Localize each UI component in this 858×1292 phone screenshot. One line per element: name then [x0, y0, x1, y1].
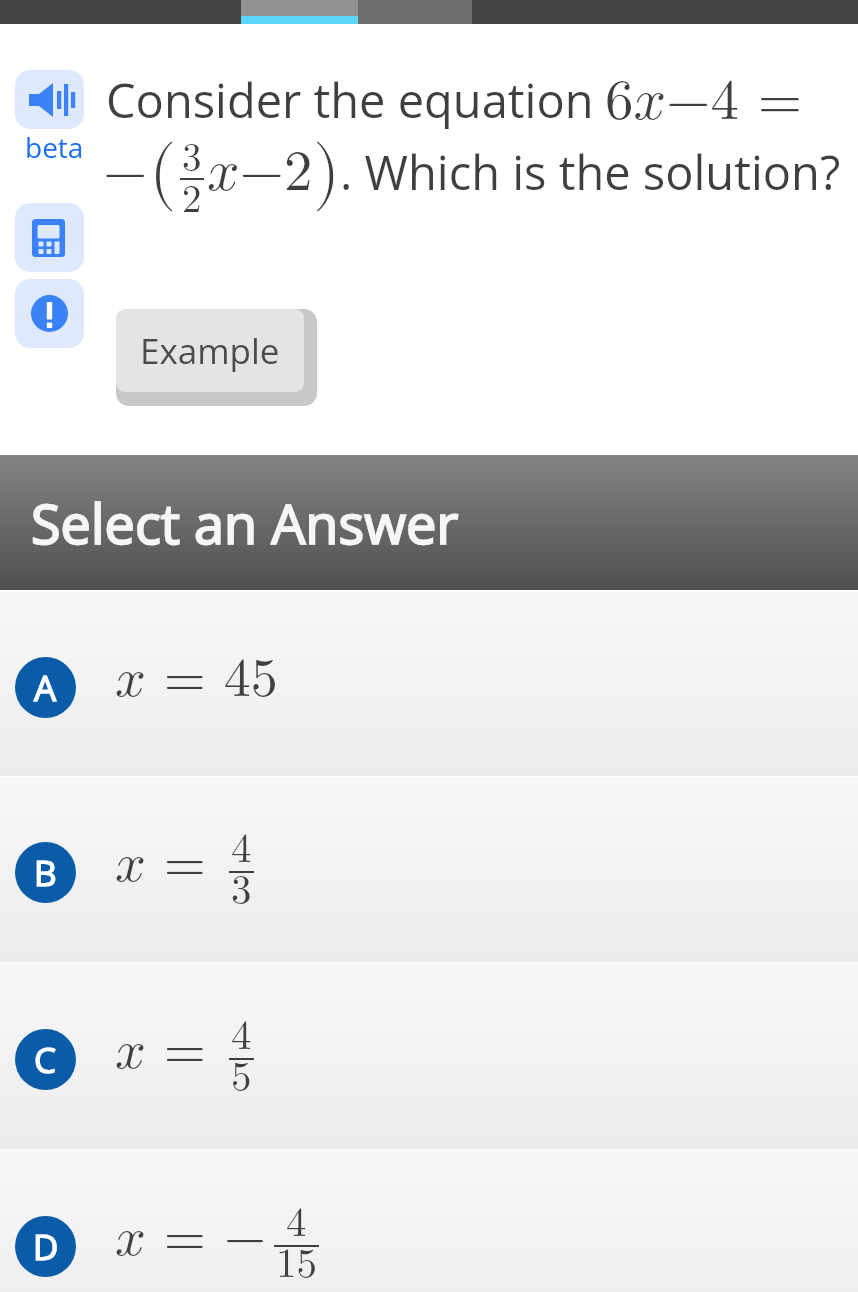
button[interactable]: Report a problem: [15, 279, 84, 348]
staticText: beta: [25, 128, 84, 166]
staticText: Example: [140, 327, 280, 375]
staticText: 4: [286, 1203, 307, 1244]
staticText: −: [103, 144, 148, 201]
staticText: 4: [231, 1016, 252, 1057]
staticText: 𝑥 =: [115, 1211, 224, 1265]
staticText: 𝑥 = 45: [115, 652, 278, 706]
staticText: 𝑥 =: [115, 1024, 224, 1078]
button[interactable]: Listen to the question: [15, 70, 84, 129]
staticText: A: [34, 664, 57, 712]
button[interactable]: A: [0, 592, 858, 776]
staticText: 3: [231, 870, 252, 911]
staticText: Consider the equation: [106, 68, 594, 132]
staticText: (: [149, 138, 177, 208]
staticText: −: [224, 1211, 267, 1265]
button[interactable]: C: [0, 963, 858, 1149]
staticText: 15: [276, 1244, 317, 1285]
button[interactable]: Example: [116, 309, 304, 392]
staticText: D: [33, 1223, 59, 1271]
staticText: ): [313, 138, 341, 208]
staticText: 6𝑥−4 =: [605, 73, 803, 130]
button[interactable]: Current tab: [241, 0, 358, 24]
staticText: 5: [231, 1057, 252, 1098]
staticText: 𝑥 =: [115, 837, 224, 891]
button[interactable]: D: [0, 1150, 858, 1292]
staticText: Select an Answer: [31, 486, 459, 560]
staticText: 3: [182, 139, 202, 178]
staticText: C: [34, 1036, 57, 1084]
button[interactable]: B: [0, 777, 858, 962]
staticText: 2: [182, 181, 202, 220]
staticText: . Which is the solution?: [340, 140, 841, 204]
staticText: 4: [231, 829, 252, 870]
staticText: B: [34, 849, 57, 897]
staticText: 𝑥−2: [207, 144, 313, 201]
button[interactable]: Calculator: [15, 203, 84, 272]
